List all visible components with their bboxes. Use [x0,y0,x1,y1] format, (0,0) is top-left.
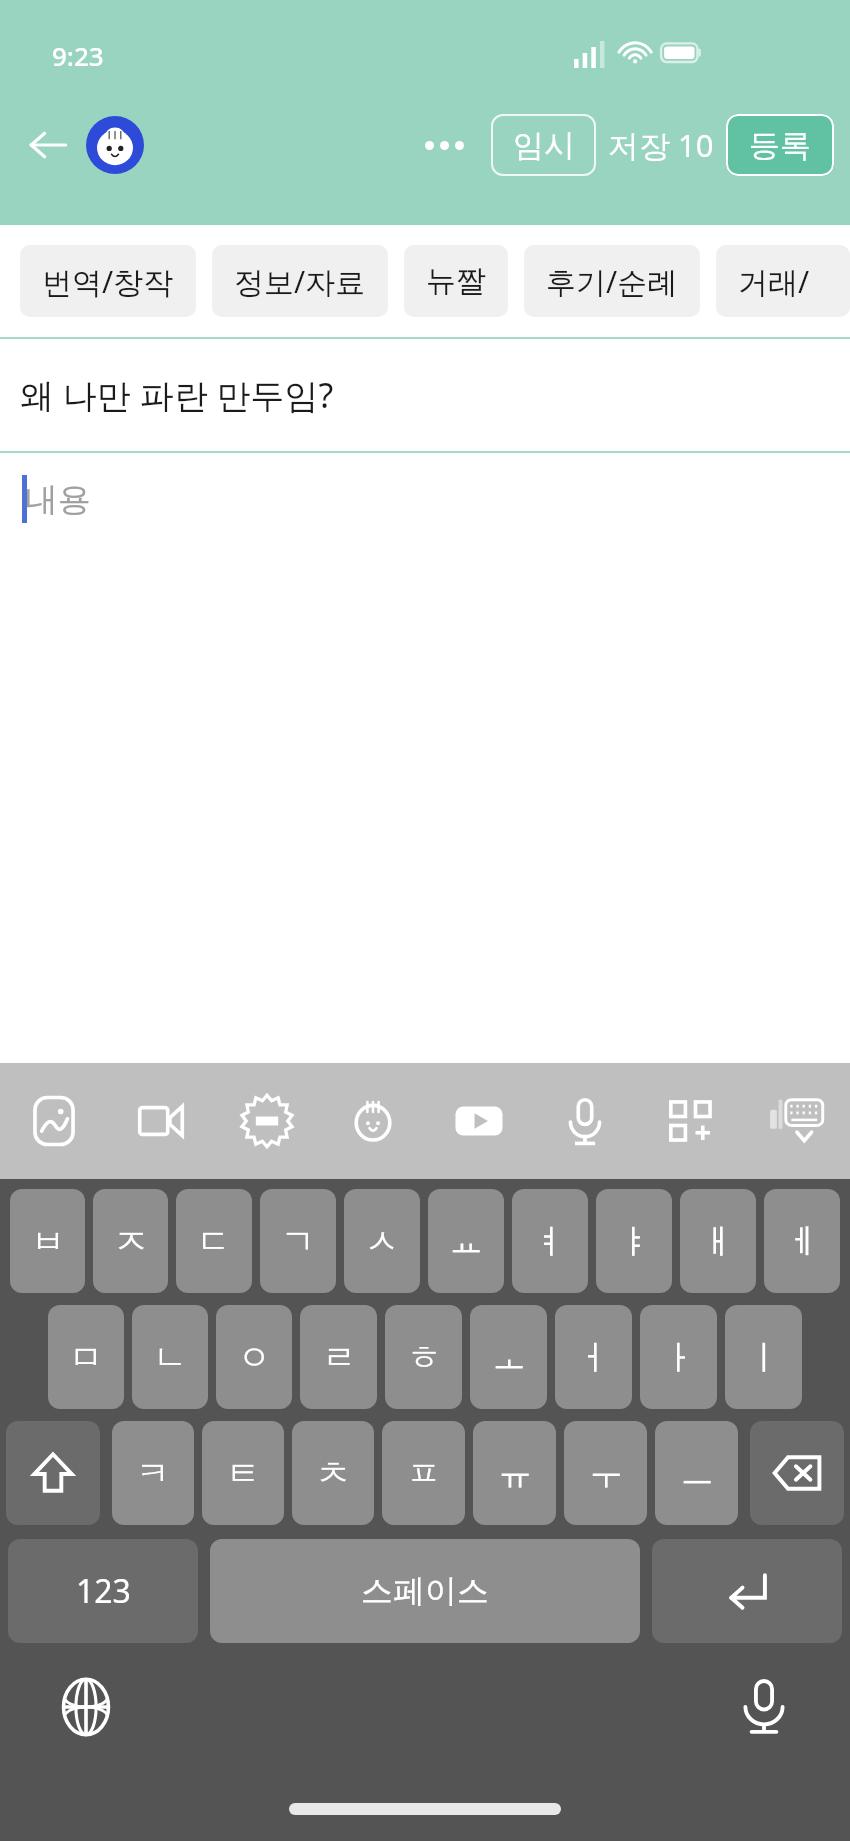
button[interactable]: 저장 10 [608,124,714,166]
staticText: 왜 나만 파란 만두임? [20,372,334,418]
staticText: ㅋ [136,1452,170,1495]
button[interactable]: ㅇ [216,1305,292,1409]
staticText: ㅠ [498,1452,532,1495]
staticText: ㅜ [589,1452,623,1495]
staticText: ㄴ [153,1336,187,1379]
button[interactable]: GIF [214,1063,320,1179]
button[interactable]: 123 [8,1539,198,1643]
staticText: ㅣ [747,1336,781,1379]
button[interactable]: ㅊ [292,1421,374,1525]
staticText: 번역/창작 [42,261,174,302]
button[interactable]: ㄷ [176,1189,252,1293]
staticText: ㅑ [617,1220,651,1263]
staticText: ㅌ [226,1452,260,1495]
staticText: ㄹ [322,1336,356,1379]
staticText: 임시 [513,126,575,165]
button[interactable]: Keyboard [744,1063,850,1179]
staticText: ㅈ [114,1220,148,1263]
button[interactable]: ㅓ [555,1305,632,1409]
staticText: ㅎ [407,1336,441,1379]
staticText: ㅗ [492,1336,526,1379]
button[interactable]: Apps [638,1063,744,1179]
button[interactable]: 번역/창작 [20,245,196,317]
button[interactable]: ㅁ [48,1305,124,1409]
staticText: 123 [76,1569,131,1613]
button[interactable]: ㅜ [564,1421,647,1525]
staticText: ㅓ [577,1336,611,1379]
staticText: ㅏ [662,1336,696,1379]
button[interactable]: ㅑ [596,1189,672,1293]
staticText: ㅕ [533,1220,567,1263]
button[interactable]: 등록 [726,114,834,176]
button[interactable]: 후기/순례 [524,245,700,317]
button[interactable]: Voice [532,1063,638,1179]
staticText: ㄱ [281,1220,315,1263]
button[interactable]: 왜 나만 파란 만두임? [0,339,850,451]
button[interactable]: ㅌ [202,1421,284,1525]
button[interactable]: Backspace [750,1421,844,1525]
staticText: ㄷ [197,1220,231,1263]
button[interactable]: 임시 [491,114,596,176]
button[interactable]: Back [16,113,80,177]
button[interactable]: Sticker [320,1063,426,1179]
button[interactable]: ㅅ [344,1189,420,1293]
staticText: ㅁ [69,1336,103,1379]
button[interactable]: ㄴ [132,1305,208,1409]
button[interactable]: 뉴짤 [404,245,508,317]
button[interactable]: Video [107,1063,214,1179]
staticText: ㅐ [701,1220,735,1263]
staticText: ㅍ [407,1452,441,1495]
staticText: 정보/자료 [234,261,366,302]
button[interactable]: Image [0,1063,107,1179]
button[interactable]: ㅠ [473,1421,556,1525]
button[interactable]: Shift [6,1421,100,1525]
button[interactable]: Enter [652,1539,842,1643]
staticText: ㅂ [31,1220,65,1263]
button[interactable]: ㄱ [260,1189,336,1293]
button[interactable]: ㅋ [112,1421,194,1525]
button[interactable]: ㅣ [725,1305,802,1409]
staticText: 거래/나 [738,261,828,302]
button[interactable]: ㅍ [382,1421,465,1525]
staticText: ㅅ [365,1220,399,1263]
button[interactable]: ㅕ [512,1189,588,1293]
button[interactable]: ㅂ [10,1189,85,1293]
staticText: 스페이스 [361,1571,489,1611]
button[interactable]: ㅐ [680,1189,756,1293]
button[interactable]: ㅔ [764,1189,840,1293]
button[interactable]: More options [415,123,473,167]
staticText: ㅇ [237,1336,271,1379]
button[interactable]: ㅈ [93,1189,168,1293]
button[interactable]: 거래/나 [716,245,850,317]
button[interactable]: ㅛ [428,1189,504,1293]
button[interactable]: Change language [48,1669,124,1745]
staticText: ㅡ [680,1452,714,1495]
staticText: ㅊ [316,1452,350,1495]
staticText: 등록 [749,126,811,165]
staticText: 9:23 [52,38,104,73]
staticText: ㅔ [785,1220,819,1263]
button[interactable]: Voice input [726,1669,802,1745]
button[interactable]: 스페이스 [210,1539,640,1643]
button[interactable]: ㄹ [300,1305,377,1409]
button[interactable]: Profile [86,116,144,174]
button[interactable]: ㅡ [655,1421,738,1525]
button[interactable]: 정보/자료 [212,245,388,317]
button[interactable]: YouTube [426,1063,532,1179]
staticText: 내용 [25,479,91,521]
button[interactable]: ㅏ [640,1305,717,1409]
staticText: 뉴짤 [426,262,486,300]
button[interactable]: ㅎ [385,1305,462,1409]
staticText: 저장 10 [608,124,714,166]
staticText: ㅛ [449,1220,483,1263]
button[interactable]: ㅗ [470,1305,547,1409]
staticText: 후기/순례 [546,261,678,302]
